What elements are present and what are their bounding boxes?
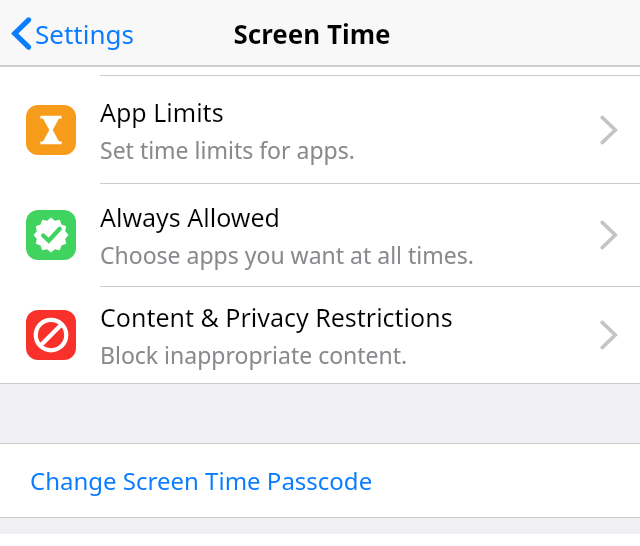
button[interactable]: Always Allowed — [0, 184, 640, 286]
staticText: Settings — [35, 16, 134, 51]
staticText: App Limits — [100, 95, 224, 129]
staticText: Always Allowed — [100, 200, 280, 234]
staticText: Choose apps you want at all times. — [100, 239, 474, 270]
staticText: Change Screen Time Passcode — [30, 464, 373, 497]
staticText: Block inappropriate content. — [100, 339, 408, 370]
staticText: Content & Privacy Restrictions — [100, 300, 453, 334]
staticText: Set time limits for apps. — [100, 134, 355, 165]
button[interactable]: Back — [0, 10, 144, 57]
button[interactable]: Change Screen Time Passcode — [0, 444, 640, 517]
button[interactable]: Content & Privacy Restrictions — [0, 287, 640, 383]
other: Back — [13, 18, 30, 49]
button[interactable]: App Limits — [0, 76, 640, 183]
staticText: Screen Time — [233, 16, 391, 51]
